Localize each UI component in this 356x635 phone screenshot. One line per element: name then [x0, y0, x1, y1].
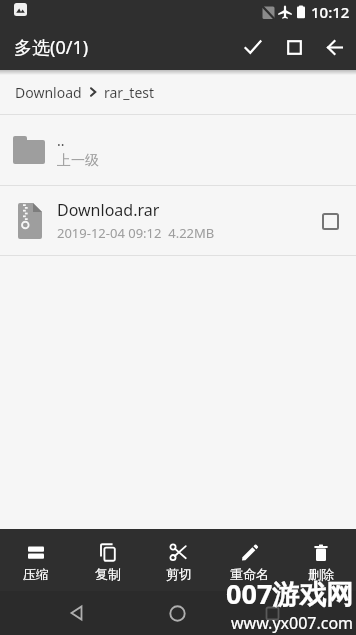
button[interactable]: ..: [0, 115, 356, 185]
button[interactable]: 重命名: [214, 529, 285, 591]
staticText: 复制: [95, 566, 121, 582]
staticText: ..: [57, 131, 65, 150]
button[interactable]: [57, 593, 97, 633]
button[interactable]: [273, 26, 315, 68]
button[interactable]: Download.rar: [0, 186, 356, 255]
staticText: 压缩: [23, 566, 49, 582]
button[interactable]: [233, 27, 273, 67]
staticText: rar_test: [104, 83, 155, 102]
button[interactable]: [310, 201, 350, 241]
button[interactable]: 剪切: [143, 529, 214, 591]
button[interactable]: 压缩: [0, 529, 72, 591]
button[interactable]: 复制: [72, 529, 143, 591]
staticText: Download.rar: [57, 199, 160, 221]
staticText: 上一级: [57, 152, 99, 170]
staticText: 剪切: [166, 566, 192, 582]
button[interactable]: [252, 593, 292, 633]
staticText: 重命名: [230, 566, 269, 582]
staticText: 007游戏网: [226, 575, 354, 612]
button[interactable]: 删除: [285, 529, 356, 591]
staticText: 2019-12-04 09:12 4.22MB: [57, 224, 215, 242]
staticText: Download: [15, 83, 82, 102]
button[interactable]: [315, 27, 355, 67]
button[interactable]: Download: [0, 70, 356, 114]
staticText: www.yx007.com: [231, 612, 354, 634]
button[interactable]: [157, 593, 197, 633]
staticText: 多选(0/1): [14, 35, 89, 60]
staticText: 删除: [308, 566, 334, 582]
staticText: 10:12: [311, 2, 350, 22]
